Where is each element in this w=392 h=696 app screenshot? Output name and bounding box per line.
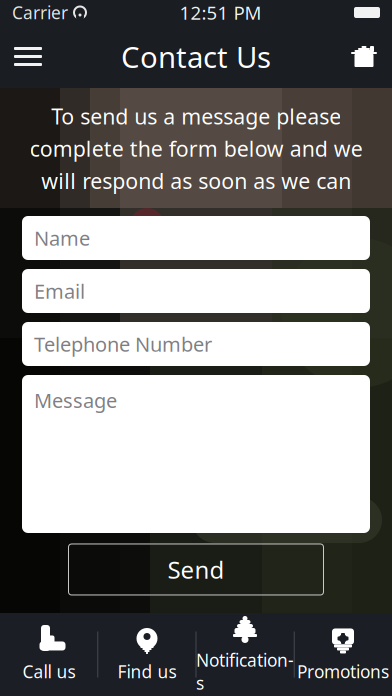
staticText: Telephone Number xyxy=(34,331,212,357)
button[interactable]: Find us xyxy=(98,620,196,688)
button[interactable]: Notifications xyxy=(196,620,294,688)
button[interactable]: Promotions xyxy=(294,620,392,688)
staticText: Name xyxy=(34,225,90,251)
button[interactable]: Call us xyxy=(0,620,98,688)
staticText: Notifications xyxy=(196,648,294,694)
staticText: Find us xyxy=(117,660,176,683)
staticText: Email xyxy=(34,278,85,304)
staticText: Call us xyxy=(22,660,75,683)
staticText: Promotions xyxy=(297,660,389,683)
staticText: 12:51 PM xyxy=(179,0,261,25)
staticText: Send xyxy=(167,554,224,585)
staticText: To send us a message please complete the… xyxy=(29,102,362,195)
button[interactable]: Send xyxy=(68,544,323,595)
staticText: Carrier xyxy=(12,1,68,24)
staticText: Message xyxy=(34,387,117,414)
button[interactable]: Home xyxy=(336,29,392,84)
staticText: Contact Us xyxy=(121,37,271,76)
button[interactable]: Menu xyxy=(0,29,56,84)
